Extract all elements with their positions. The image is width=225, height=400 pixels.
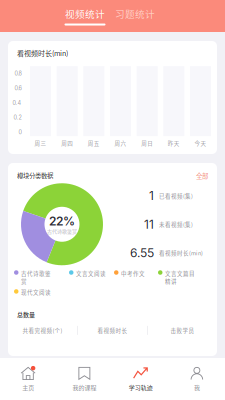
- staticText: 古代诗歌鉴 赏: [21, 269, 51, 285]
- staticText: 模块分类数据: [17, 171, 53, 180]
- staticText: 6.55: [130, 245, 154, 260]
- staticText: 文言文阅读: [76, 269, 106, 277]
- staticText: 总数量: [17, 310, 35, 319]
- button[interactable]: 视频统计: [64, 7, 105, 25]
- staticText: 0.4: [12, 100, 21, 106]
- staticText: 学习轨迹: [129, 383, 153, 392]
- staticText: 古代诗歌鉴赏: [47, 227, 77, 235]
- staticText: 周六: [114, 139, 126, 147]
- staticText: 0.6: [14, 85, 21, 92]
- staticText: 文言文篇目 精讲: [165, 269, 195, 285]
- staticText: 击败学员: [170, 326, 194, 334]
- staticText: 中考作文: [121, 269, 145, 277]
- staticText: 1: [149, 188, 154, 203]
- staticText: 全部: [196, 171, 208, 180]
- staticText: 习题统计: [115, 7, 155, 20]
- staticText: 11: [144, 217, 154, 231]
- staticText: 0.2: [13, 114, 21, 121]
- staticText: 共看完视频(个): [23, 326, 63, 334]
- staticText: 周三: [34, 139, 46, 147]
- staticText: 周五: [88, 139, 100, 147]
- staticText: 主页: [22, 383, 34, 392]
- staticText: 未看视频(集): [159, 220, 193, 228]
- staticText: 0: [18, 129, 21, 136]
- staticText: 昨天: [168, 139, 180, 147]
- staticText: 周四: [61, 139, 73, 147]
- staticText: 已看视频(集): [159, 192, 193, 200]
- staticText: 22%: [49, 214, 75, 228]
- staticText: 周日: [141, 139, 153, 147]
- staticText: 看视频时长(min): [159, 249, 203, 257]
- staticText: 我: [194, 383, 200, 392]
- staticText: 视频统计: [65, 7, 105, 20]
- button[interactable]: 我: [169, 363, 225, 395]
- staticText: 看视频时长: [97, 326, 127, 334]
- staticText: 现代文阅读: [21, 288, 51, 296]
- button[interactable]: 习题统计: [114, 7, 155, 25]
- button[interactable]: 我的课程: [56, 363, 112, 395]
- button[interactable]: 全部: [196, 171, 208, 180]
- staticText: 0.8: [14, 70, 21, 77]
- button[interactable]: 学习轨迹: [112, 363, 169, 395]
- staticText: 今天: [194, 139, 206, 147]
- staticText: 看视频时长(min): [17, 48, 68, 58]
- staticText: 我的课程: [72, 383, 96, 392]
- button[interactable]: 主页: [0, 363, 56, 395]
